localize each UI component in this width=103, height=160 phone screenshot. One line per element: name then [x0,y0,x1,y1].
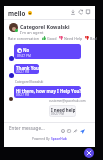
staticText: SpaceHub [51,137,67,141]
button[interactable]: Close chat [84,148,94,158]
staticText: Good [47,36,57,41]
button[interactable] [85,36,89,40]
staticText: 09:27 PM [16,70,30,74]
staticText: No [23,47,30,53]
staticText: Bad [90,36,97,41]
staticText: I'm an agent [20,30,44,35]
button[interactable] [59,36,63,40]
button[interactable]: Download transcript [70,9,76,15]
staticText: Powered By [32,137,51,141]
staticText: I need help [51,107,76,113]
button[interactable]: Restart conversation [78,9,84,15]
staticText: Need Help [64,36,83,41]
staticText: 09:27 PM [51,112,64,116]
button[interactable]: Emoji [60,128,66,134]
staticText: 09:27 PM [16,93,30,97]
staticText: 09:27 PM [17,54,31,58]
staticText: Enter message... [9,125,45,131]
button[interactable]: Minimize chat [85,9,91,15]
staticText: mello [8,9,26,17]
staticText: Rate conversation [8,36,40,41]
button[interactable]: Thank You! [14,64,39,74]
button[interactable] [42,36,46,40]
staticText: Hi there, how may I Help You? [16,88,81,94]
staticText: Categorel Kowalski [15,80,44,84]
button[interactable]: Attach file [72,128,78,134]
button[interactable]: Hi there, how may I Help You? [14,86,81,98]
button[interactable]: I need help [49,105,76,117]
button[interactable]: No [14,44,81,59]
button[interactable]: Send message [79,128,85,134]
button[interactable]: Send image [66,128,72,134]
staticText: customer@spacehub.com [49,99,86,103]
staticText: Thank You! [16,65,39,71]
staticText: Categorel Kowalski [20,23,70,30]
